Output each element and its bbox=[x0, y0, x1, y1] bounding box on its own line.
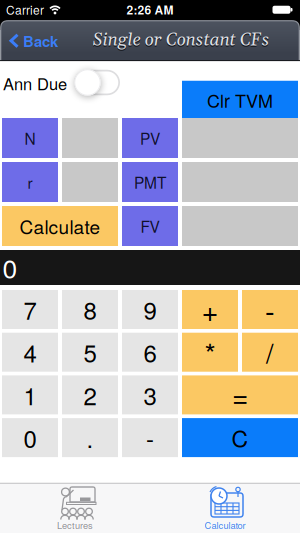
button[interactable]: 6 bbox=[122, 333, 178, 372]
button[interactable]: - bbox=[122, 418, 178, 457]
staticText: 6 bbox=[143, 335, 156, 369]
staticText: - bbox=[146, 420, 154, 455]
button[interactable]: 7 bbox=[2, 290, 58, 329]
staticText: * bbox=[204, 331, 215, 373]
staticText: 2:26 AM bbox=[126, 1, 173, 18]
staticText: PMT bbox=[134, 171, 166, 193]
staticText: Calculate bbox=[19, 212, 100, 240]
staticText: 7 bbox=[23, 292, 36, 327]
button[interactable]: 3 bbox=[122, 375, 178, 414]
staticText: FV bbox=[140, 215, 159, 237]
staticText: 1 bbox=[23, 378, 36, 412]
button[interactable]: N bbox=[2, 118, 58, 158]
staticText: Single or Constant CFs bbox=[92, 30, 269, 53]
button[interactable]: 4 bbox=[2, 333, 58, 372]
staticText: 3 bbox=[143, 378, 156, 412]
button[interactable]: Ann Due bbox=[74, 70, 120, 95]
button[interactable]: + bbox=[182, 290, 238, 329]
button[interactable]: FV bbox=[122, 206, 178, 246]
staticText: Calculator bbox=[204, 518, 245, 532]
staticText: r bbox=[27, 171, 32, 193]
button[interactable]: Calculator bbox=[150, 483, 300, 533]
staticText: = bbox=[232, 375, 248, 415]
button[interactable]: / bbox=[242, 333, 298, 372]
staticText: Carrier bbox=[6, 1, 44, 18]
staticText: 4 bbox=[23, 335, 36, 369]
staticText: . bbox=[86, 420, 93, 455]
staticText: N bbox=[24, 127, 35, 149]
button[interactable]: 8 bbox=[62, 290, 118, 329]
staticText: PV bbox=[140, 127, 160, 149]
staticText: 9 bbox=[143, 292, 156, 327]
staticText: 8 bbox=[83, 292, 96, 327]
button[interactable]: Calculate bbox=[2, 206, 118, 246]
staticText: 2 bbox=[83, 378, 96, 412]
staticText: 0 bbox=[2, 248, 17, 286]
staticText: - bbox=[265, 289, 275, 330]
button[interactable]: 0 bbox=[2, 418, 58, 457]
button[interactable]: . bbox=[62, 418, 118, 457]
staticText: 0 bbox=[23, 420, 36, 455]
button[interactable]: Back bbox=[9, 30, 58, 51]
staticText: / bbox=[266, 333, 274, 372]
staticText: 5 bbox=[83, 335, 96, 369]
staticText: Ann Due bbox=[3, 71, 67, 95]
staticText: Back bbox=[23, 30, 58, 51]
staticText: Single or Constant CFs bbox=[92, 29, 269, 51]
button[interactable]: 1 bbox=[2, 375, 58, 414]
button[interactable]: * bbox=[182, 333, 238, 372]
button[interactable]: C bbox=[182, 418, 298, 457]
button[interactable]: - bbox=[242, 290, 298, 329]
button[interactable]: 2 bbox=[62, 375, 118, 414]
staticText: + bbox=[201, 289, 218, 330]
staticText: Lectures bbox=[57, 518, 93, 532]
button[interactable]: PV bbox=[122, 118, 178, 158]
staticText: C bbox=[231, 421, 248, 454]
button[interactable]: Lectures bbox=[0, 483, 150, 533]
staticText: Clr TVM bbox=[207, 87, 273, 113]
button[interactable]: = bbox=[182, 375, 298, 414]
button[interactable]: 9 bbox=[122, 290, 178, 329]
button[interactable]: r bbox=[2, 162, 58, 202]
button[interactable]: Clr TVM bbox=[182, 81, 298, 119]
button[interactable]: 5 bbox=[62, 333, 118, 372]
button[interactable]: PMT bbox=[122, 162, 178, 202]
